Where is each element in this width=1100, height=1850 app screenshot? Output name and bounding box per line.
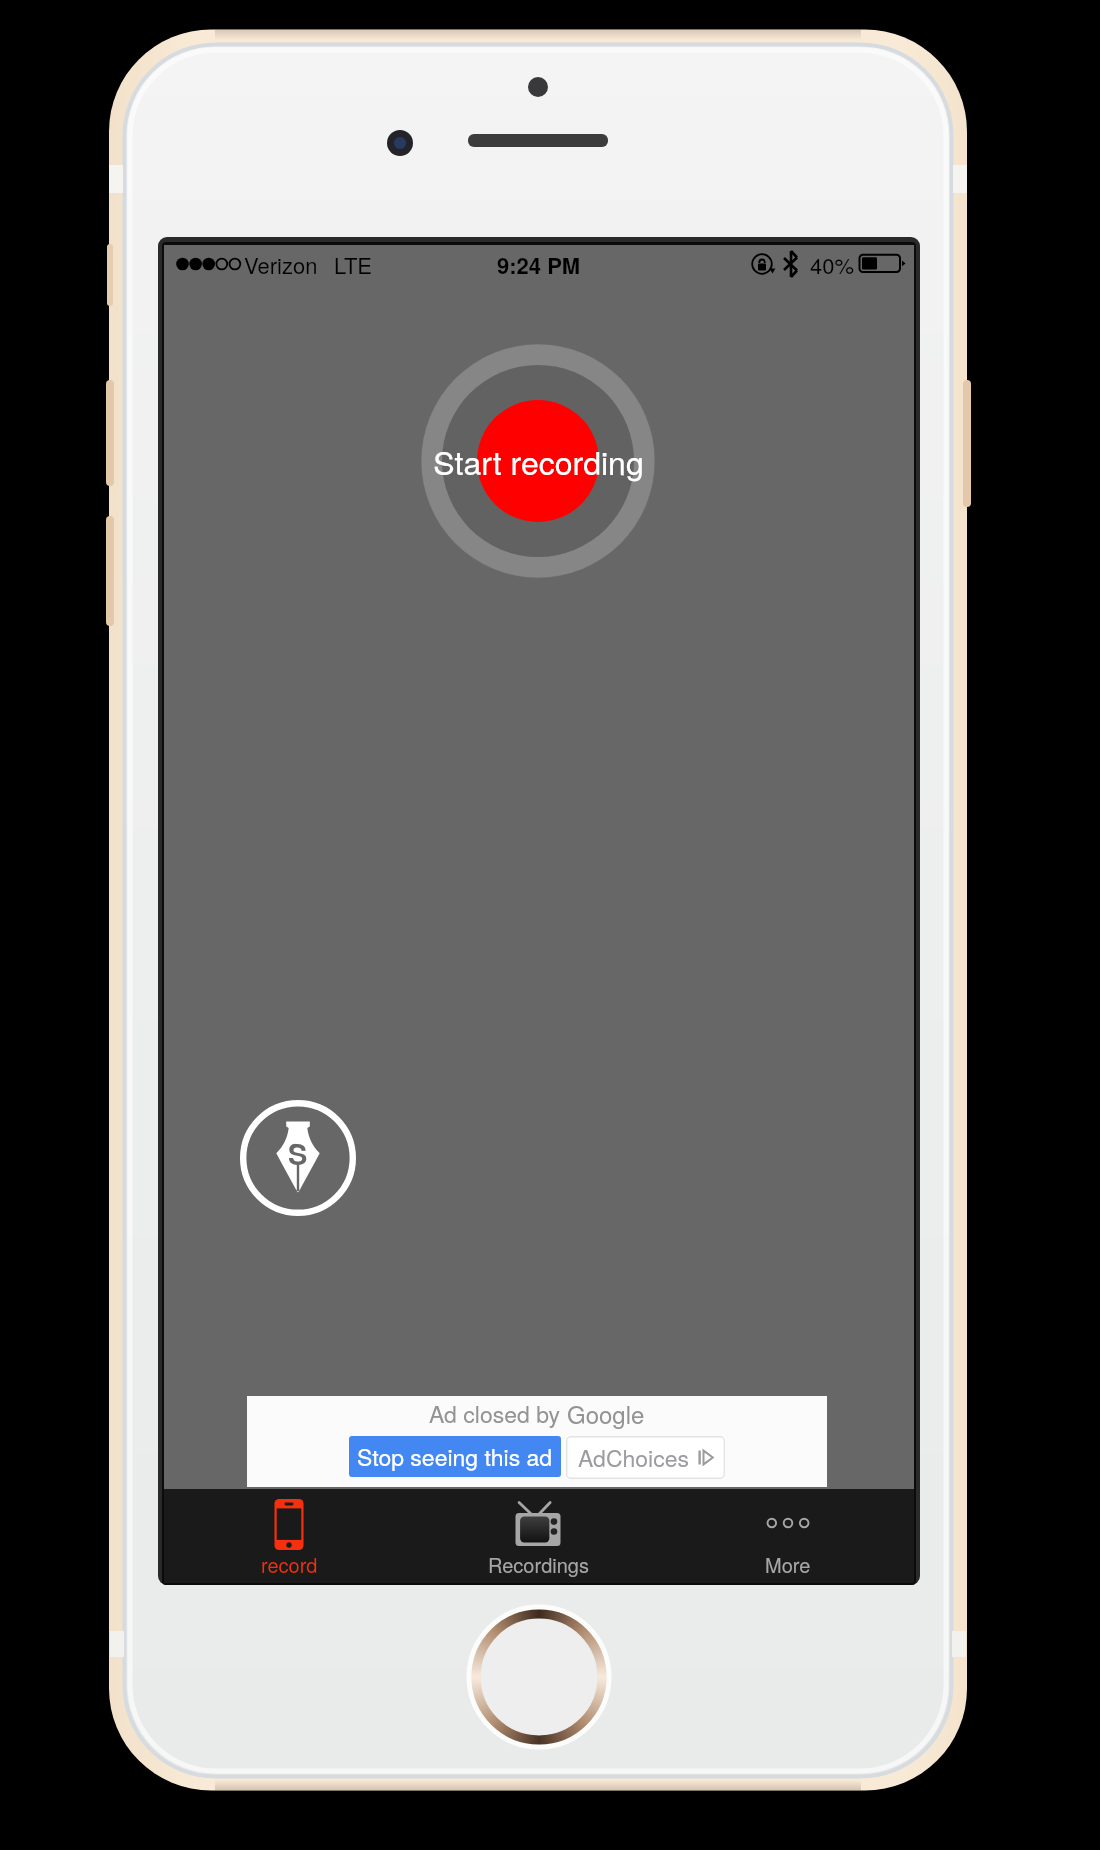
staticText: 9:24 PM xyxy=(497,249,581,281)
button[interactable]: Start recording xyxy=(421,344,655,578)
staticText: LTE xyxy=(334,249,373,281)
staticText: More xyxy=(765,1550,811,1579)
button[interactable]: Stop seeing this ad xyxy=(349,1436,561,1477)
staticText: Ad closed by xyxy=(429,1397,567,1430)
staticText: S xyxy=(288,1132,308,1174)
staticText: Start recording xyxy=(433,438,644,484)
button[interactable]: record xyxy=(227,1489,351,1583)
button[interactable]: More xyxy=(726,1489,850,1583)
button[interactable]: AdChoices xyxy=(566,1436,725,1479)
staticText: Recordings xyxy=(488,1550,589,1579)
button[interactable]: Recordings xyxy=(476,1489,600,1583)
staticText: 40% xyxy=(810,249,855,281)
button[interactable]: Watermark xyxy=(238,1098,358,1218)
staticText: record xyxy=(261,1550,318,1579)
staticText: Google xyxy=(567,1396,645,1430)
staticText: AdChoices xyxy=(578,1441,689,1474)
staticText: Stop seeing this ad xyxy=(357,1440,553,1473)
staticText: Verizon xyxy=(244,249,318,281)
